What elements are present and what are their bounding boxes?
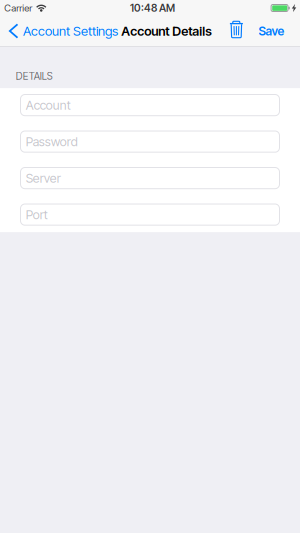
- button[interactable]: Server: [20, 167, 279, 189]
- button[interactable]: Delete account: [226, 17, 247, 45]
- button[interactable]: Password: [20, 131, 279, 152]
- staticText: Port: [26, 207, 48, 222]
- button[interactable]: Account Settings: [0, 17, 118, 45]
- staticText: Account Details: [121, 23, 212, 39]
- staticText: Server: [26, 170, 61, 186]
- button[interactable]: Account: [20, 94, 279, 116]
- staticText: Account: [26, 97, 71, 113]
- staticText: Carrier: [4, 2, 32, 14]
- button[interactable]: Port: [20, 204, 279, 225]
- staticText: Save: [259, 24, 285, 38]
- staticText: 10:48 AM: [130, 2, 175, 14]
- staticText: DETAILS: [16, 70, 53, 82]
- button[interactable]: Save: [259, 18, 300, 44]
- staticText: Password: [26, 134, 78, 149]
- staticText: Account Settings: [23, 23, 118, 39]
